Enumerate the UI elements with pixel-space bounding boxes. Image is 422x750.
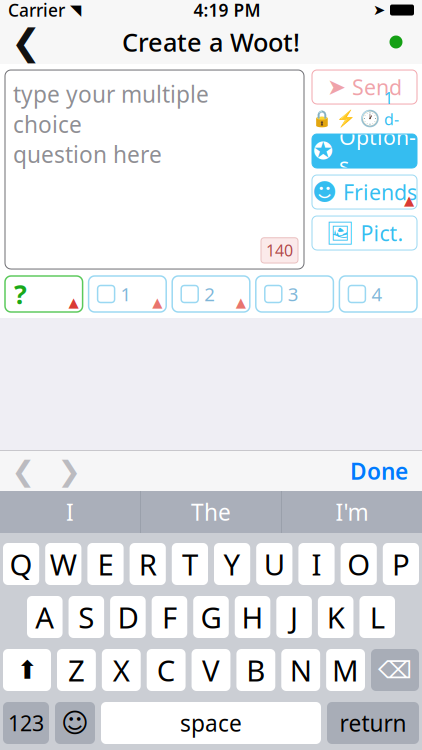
staticText: S xyxy=(78,597,94,636)
button[interactable]: ☻ xyxy=(312,175,417,209)
button[interactable]: D xyxy=(110,596,146,638)
staticText: ⬆ xyxy=(16,656,37,684)
button[interactable]: Emoji xyxy=(55,702,95,744)
staticText: W xyxy=(50,544,77,583)
button[interactable]: 3 xyxy=(256,276,333,312)
button[interactable]: Next field xyxy=(46,451,92,491)
staticText: ▲ xyxy=(69,295,79,310)
staticText: ❮ xyxy=(11,455,34,487)
staticText: 4 xyxy=(371,282,382,306)
button[interactable]: return xyxy=(327,702,419,744)
staticText: 3 xyxy=(288,282,299,306)
button[interactable]: ✪ xyxy=(312,134,417,168)
button[interactable]: K xyxy=(318,596,353,638)
staticText: P xyxy=(392,544,410,583)
button[interactable]: Y xyxy=(214,543,250,585)
staticText: ☻ xyxy=(312,178,337,206)
button[interactable]: X xyxy=(102,649,141,691)
staticText: return xyxy=(339,708,406,738)
staticText: ❮ xyxy=(11,22,41,62)
staticText: X xyxy=(113,650,130,689)
staticText: D xyxy=(117,597,138,636)
button[interactable]: Z xyxy=(57,649,96,691)
button[interactable]: C xyxy=(147,649,186,691)
staticText: ❯ xyxy=(57,455,80,487)
button[interactable]: U xyxy=(256,543,292,585)
staticText: ⚡ xyxy=(336,110,356,128)
button[interactable]: ➤ xyxy=(312,70,417,104)
staticText: ➤ xyxy=(373,2,385,18)
button[interactable]: 4 xyxy=(339,276,417,312)
staticText: 4:19 PM xyxy=(193,0,260,21)
button[interactable]: Previous field xyxy=(0,451,46,491)
staticText: A xyxy=(35,597,54,636)
button[interactable]: P xyxy=(383,543,419,585)
staticText: J xyxy=(290,597,298,636)
button[interactable]: I'm xyxy=(282,491,422,533)
button[interactable]: space xyxy=(101,702,321,744)
staticText: ☺ xyxy=(61,708,89,738)
button[interactable]: I xyxy=(298,543,335,585)
button[interactable]: 1 xyxy=(89,276,166,312)
button[interactable]: Shift xyxy=(3,649,51,691)
button[interactable]: V xyxy=(192,649,230,691)
staticText: I'm xyxy=(335,497,368,527)
button[interactable]: Delete xyxy=(371,649,419,691)
button[interactable]: R xyxy=(130,543,166,585)
staticText: 2 xyxy=(204,282,215,306)
button[interactable]: J xyxy=(276,596,312,638)
staticText: F xyxy=(162,597,177,636)
button[interactable]: M xyxy=(326,649,365,691)
staticText: 1 xyxy=(121,282,132,306)
button[interactable]: A xyxy=(27,596,63,638)
staticText: ▲ xyxy=(404,193,414,208)
staticText: type your multiple choice question here xyxy=(13,79,209,169)
staticText: The xyxy=(191,497,231,527)
button[interactable]: E xyxy=(87,543,124,585)
button[interactable]: Q xyxy=(3,543,39,585)
staticText: U xyxy=(264,544,285,583)
staticText: H xyxy=(242,597,264,636)
button[interactable]: Done xyxy=(336,451,422,491)
button[interactable]: 🖼 xyxy=(312,216,417,250)
staticText: O xyxy=(347,544,370,583)
button[interactable]: G xyxy=(193,596,229,638)
button[interactable]: N xyxy=(281,649,320,691)
button[interactable]: T xyxy=(172,543,208,585)
staticText: ⌫ xyxy=(378,656,412,684)
button[interactable]: 2 xyxy=(172,276,250,312)
button[interactable]: O xyxy=(341,543,377,585)
staticText: M xyxy=(332,650,359,689)
staticText: V xyxy=(202,650,220,689)
button[interactable]: Back xyxy=(0,20,52,64)
staticText: T xyxy=(182,544,198,583)
staticText: Done xyxy=(350,456,408,486)
staticText: I xyxy=(311,544,321,583)
button[interactable]: B xyxy=(236,649,275,691)
button[interactable]: Status xyxy=(370,20,422,64)
staticText: ➤ xyxy=(327,74,346,100)
staticText: ◥ xyxy=(70,2,81,18)
button[interactable]: W xyxy=(45,543,81,585)
staticText: B xyxy=(246,650,265,689)
staticText: K xyxy=(327,597,345,636)
button[interactable]: S xyxy=(69,596,104,638)
button[interactable]: The xyxy=(141,491,281,533)
staticText: 1 day xyxy=(384,87,401,151)
staticText: ? xyxy=(14,276,27,312)
staticText: G xyxy=(200,597,221,636)
staticText: Q xyxy=(10,544,33,583)
staticText: Y xyxy=(224,544,241,583)
button[interactable]: F xyxy=(152,596,187,638)
button[interactable]: L xyxy=(359,596,395,638)
button[interactable]: ? xyxy=(5,276,83,312)
staticText: 140 xyxy=(266,240,293,261)
staticText: 123 xyxy=(8,709,44,737)
button[interactable]: I xyxy=(0,491,140,533)
staticText: Options xyxy=(339,123,416,179)
button[interactable]: 123 xyxy=(3,702,49,744)
button[interactable]: H xyxy=(235,596,270,638)
staticText: Z xyxy=(68,650,85,689)
staticText: ✪ xyxy=(313,137,333,165)
staticText: Send xyxy=(352,73,402,101)
